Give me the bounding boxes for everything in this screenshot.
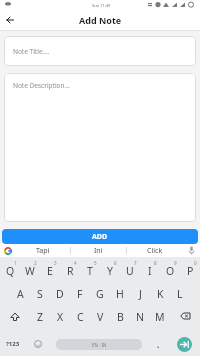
staticText: S	[37, 287, 43, 301]
staticText: A	[17, 287, 24, 301]
button[interactable]: EN · IN	[56, 339, 142, 350]
staticText: P	[187, 264, 194, 278]
staticText: Click	[147, 246, 163, 256]
button[interactable]	[169, 333, 200, 355]
button[interactable]: D	[50, 282, 70, 305]
staticText: .	[157, 339, 160, 350]
staticText: W	[25, 264, 35, 278]
button[interactable]: F	[70, 282, 90, 305]
button[interactable]: S	[30, 282, 50, 305]
button[interactable]: P	[180, 259, 200, 282]
staticText: K	[157, 287, 164, 301]
button[interactable]: Q	[0, 259, 20, 282]
button[interactable]: N	[130, 305, 150, 328]
staticText: ?123	[6, 340, 20, 348]
button[interactable]: V	[90, 305, 110, 328]
button[interactable]: U	[120, 259, 140, 282]
staticText: T	[87, 264, 93, 278]
staticText: E	[47, 264, 53, 278]
button[interactable]	[182, 244, 200, 257]
staticText: 4	[74, 260, 77, 266]
staticText: EN · IN	[92, 342, 107, 348]
staticText: 5	[94, 260, 97, 266]
button[interactable]: J	[130, 282, 150, 305]
button[interactable]: K	[150, 282, 170, 305]
button[interactable]: B	[110, 305, 130, 328]
staticText: D	[56, 287, 64, 301]
button[interactable]: A	[10, 282, 30, 305]
staticText: J	[139, 287, 142, 301]
button[interactable]: .	[148, 333, 169, 355]
staticText: 0	[194, 260, 197, 266]
button[interactable]	[0, 305, 30, 328]
button[interactable]: C	[70, 305, 90, 328]
staticText: 3	[54, 260, 57, 266]
button[interactable]: Click	[127, 244, 182, 257]
staticText: O	[166, 264, 175, 278]
button[interactable]: I	[140, 259, 160, 282]
button[interactable]: H	[110, 282, 130, 305]
button[interactable]: Z	[30, 305, 50, 328]
staticText: H	[116, 287, 124, 301]
staticText: V	[97, 310, 104, 324]
staticText: I	[148, 264, 152, 278]
button[interactable]: ?123	[0, 333, 26, 355]
button[interactable]: ADD	[2, 229, 198, 244]
button[interactable]: L	[170, 282, 190, 305]
button[interactable]: X	[50, 305, 70, 328]
staticText: X	[57, 310, 64, 324]
button[interactable]: Y	[100, 259, 120, 282]
staticText: Y	[107, 264, 113, 278]
button[interactable]: E	[40, 259, 60, 282]
button[interactable]	[26, 333, 50, 355]
staticText: 2	[34, 260, 37, 266]
staticText: Z	[37, 310, 44, 324]
button[interactable]	[0, 10, 20, 30]
staticText: 6	[114, 260, 117, 266]
staticText: F	[77, 287, 83, 301]
staticText: G	[96, 287, 104, 301]
button[interactable]: T	[80, 259, 100, 282]
button[interactable]: Ini	[71, 244, 126, 257]
button[interactable]: M	[150, 305, 170, 328]
button[interactable]: R	[60, 259, 80, 282]
staticText: 1	[14, 260, 17, 266]
staticText: M	[155, 310, 165, 324]
button[interactable]: G	[90, 282, 110, 305]
staticText: 8	[154, 260, 157, 266]
staticText: U	[126, 264, 134, 278]
button[interactable]	[177, 337, 192, 352]
staticText: Ini	[94, 246, 103, 256]
staticText: 7	[134, 260, 137, 266]
staticText: Sun 11:49	[92, 3, 111, 8]
button[interactable]: W	[20, 259, 40, 282]
button[interactable]: Tapi	[16, 244, 70, 257]
staticText: Note Title....	[13, 47, 50, 56]
staticText: 9	[174, 260, 177, 266]
staticText: ADD	[92, 232, 108, 242]
staticText: L	[177, 287, 183, 301]
staticText: N	[136, 310, 144, 324]
button[interactable]: Note Title....	[4, 36, 196, 66]
button[interactable]: Note Description...	[4, 73, 196, 222]
button[interactable]	[170, 305, 200, 328]
button[interactable]	[0, 244, 16, 257]
staticText: Q	[6, 264, 15, 278]
staticText: R	[67, 264, 74, 278]
staticText: Note Description...	[13, 81, 70, 90]
staticText: C	[77, 310, 84, 324]
staticText: B	[117, 310, 124, 324]
staticText: Tapi	[36, 246, 50, 256]
staticText: Add Note	[79, 14, 122, 26]
button[interactable]: O	[160, 259, 180, 282]
